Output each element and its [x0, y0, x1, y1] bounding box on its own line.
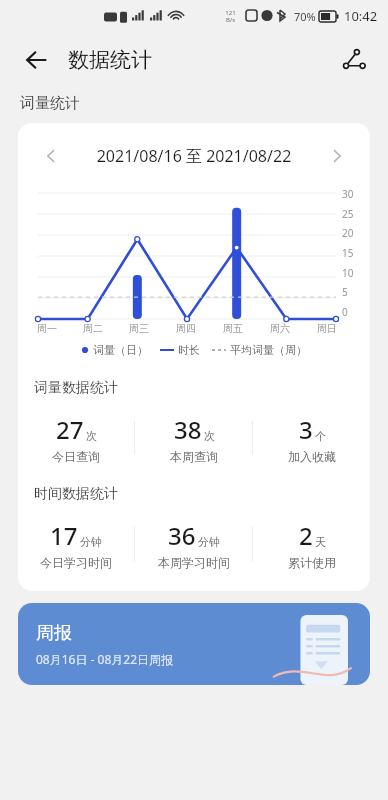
- button[interactable]: 38: [135, 411, 252, 465]
- staticText: 加入收藏: [288, 449, 336, 464]
- staticText: 周二: [83, 322, 103, 335]
- button[interactable]: 27: [18, 411, 134, 465]
- staticText: 0: [342, 305, 348, 319]
- staticText: 周五: [223, 322, 243, 335]
- staticText: 17: [50, 519, 78, 552]
- staticText: 数据统计: [68, 47, 152, 73]
- staticText: 121 B/s: [225, 9, 236, 23]
- staticText: 周三: [129, 322, 149, 335]
- staticText: 周四: [176, 322, 196, 335]
- button[interactable]: Share: [334, 40, 374, 80]
- staticText: 时间数据统计: [34, 485, 118, 503]
- staticText: 词量（日）: [93, 343, 148, 357]
- staticText: 周报: [36, 622, 72, 645]
- staticText: 次: [204, 429, 215, 443]
- staticText: 周日: [317, 322, 337, 335]
- staticText: 36: [168, 519, 196, 552]
- button[interactable]: 3: [253, 411, 370, 465]
- staticText: 词量数据统计: [34, 379, 118, 397]
- staticText: 3: [299, 413, 313, 446]
- staticText: 70%: [294, 9, 316, 24]
- staticText: 今日查询: [52, 449, 100, 464]
- staticText: 25: [342, 207, 354, 221]
- button[interactable]: 2: [253, 517, 370, 571]
- staticText: 今日学习时间: [40, 555, 112, 570]
- staticText: 2021/08/16 至 2021/08/22: [68, 145, 320, 167]
- staticText: 30: [342, 187, 354, 201]
- button[interactable]: 周报: [18, 603, 370, 685]
- staticText: 2: [299, 519, 313, 552]
- staticText: 天: [315, 535, 326, 549]
- staticText: 5: [342, 285, 348, 299]
- staticText: 周一: [37, 322, 57, 335]
- staticText: 15: [342, 246, 354, 260]
- staticText: 20: [342, 226, 354, 240]
- staticText: 10: [342, 266, 354, 280]
- staticText: 本周学习时间: [158, 555, 230, 570]
- button[interactable]: Next week: [320, 139, 354, 173]
- button[interactable]: 17: [18, 517, 134, 571]
- staticText: 时长: [178, 343, 200, 357]
- staticText: 个: [315, 429, 326, 443]
- staticText: 分钟: [80, 535, 102, 549]
- staticText: 平均词量（周）: [230, 343, 307, 357]
- staticText: 次: [86, 429, 97, 443]
- button[interactable]: 36: [135, 517, 252, 571]
- staticText: 周六: [270, 322, 290, 335]
- staticText: 08月16日 - 08月22日周报: [36, 651, 174, 667]
- staticText: 本周查询: [170, 449, 218, 464]
- staticText: 27: [56, 413, 84, 446]
- staticText: 38: [174, 413, 202, 446]
- staticText: 10:42: [344, 7, 378, 25]
- staticText: 累计使用: [288, 555, 336, 570]
- button[interactable]: Previous week: [34, 139, 68, 173]
- staticText: 词量统计: [20, 94, 80, 113]
- staticText: 分钟: [198, 535, 220, 549]
- button[interactable]: Back: [16, 40, 56, 80]
